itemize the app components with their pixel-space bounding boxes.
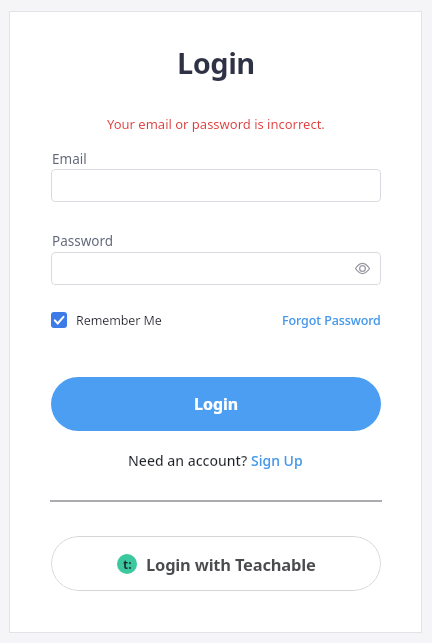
- staticText: Your email or password is incorrect.: [107, 115, 325, 133]
- button[interactable]: Forgot Password: [282, 312, 381, 329]
- button[interactable]: [51, 169, 381, 202]
- staticText: t:: [123, 556, 132, 572]
- staticText: Need an account?: [128, 451, 251, 470]
- staticText: Password: [52, 232, 114, 250]
- button[interactable]: [51, 252, 381, 285]
- button[interactable]: Remember Me: [51, 311, 162, 329]
- staticText: Login: [177, 43, 255, 81]
- button[interactable]: Sign Up: [251, 451, 303, 470]
- button[interactable]: Login: [51, 377, 381, 431]
- staticText: Email: [52, 150, 87, 168]
- staticText: Remember Me: [76, 312, 162, 329]
- staticText: Login with Teachable: [146, 553, 316, 575]
- button[interactable]: t:: [51, 536, 381, 591]
- staticText: Login: [194, 393, 239, 415]
